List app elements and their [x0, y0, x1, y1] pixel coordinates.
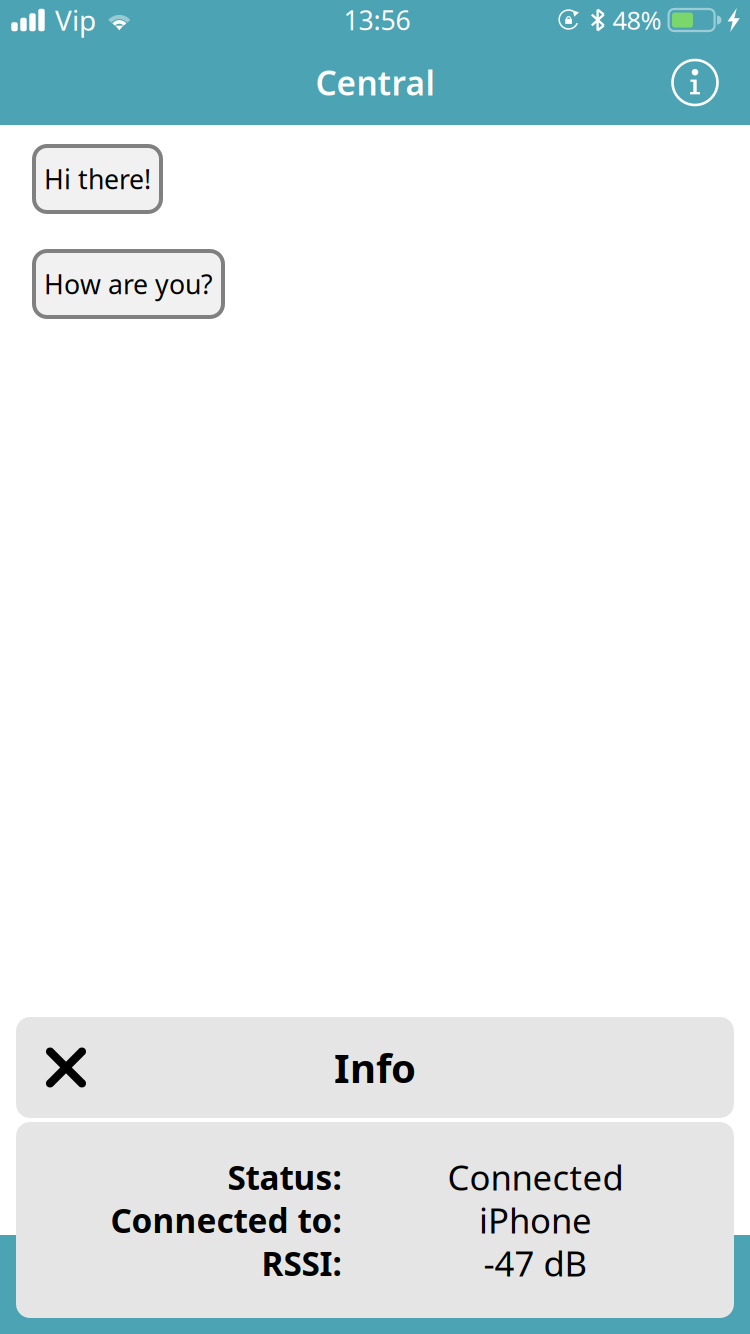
staticText: 13:56	[343, 2, 410, 38]
button[interactable]: Close	[32, 1034, 100, 1100]
staticText: iPhone	[479, 1197, 592, 1243]
staticText: -47 dB	[483, 1240, 587, 1286]
staticText: Central	[315, 60, 434, 105]
button[interactable]: Info	[665, 52, 725, 112]
staticText: RSSI:	[261, 1241, 341, 1285]
staticText: 48%	[613, 3, 662, 37]
staticText: Info	[334, 1041, 416, 1094]
staticText: Hi there!	[44, 161, 151, 197]
staticText: Status:	[227, 1155, 341, 1199]
staticText: Vip	[55, 1, 96, 39]
staticText: Connected	[447, 1154, 623, 1200]
staticText: How are you?	[44, 266, 213, 302]
staticText: Connected to:	[110, 1198, 341, 1242]
